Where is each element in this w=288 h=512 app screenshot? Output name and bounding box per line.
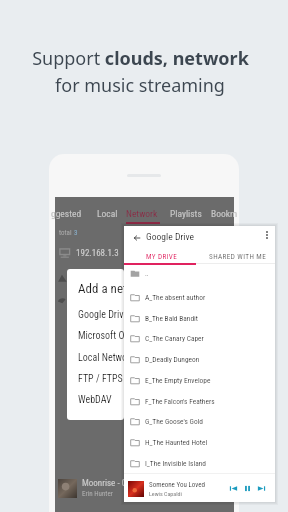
staticText: Moonrise - 0 bbox=[82, 478, 127, 489]
staticText: A_The absent author bbox=[145, 293, 206, 302]
button[interactable]: Someone You Loved bbox=[124, 475, 275, 502]
staticText: Someone You Loved bbox=[149, 481, 205, 489]
button[interactable]: Previous bbox=[227, 482, 240, 495]
button[interactable]: 192.168.1.3 bbox=[59, 245, 238, 261]
staticText: Google Drive bbox=[146, 231, 195, 242]
button[interactable]: Google Drive bbox=[67, 304, 124, 325]
staticText: FTP / FTPS / SFTP bbox=[78, 373, 124, 385]
button[interactable]: Pause bbox=[241, 482, 254, 495]
staticText: ggested bbox=[51, 208, 82, 219]
button[interactable]: MY DRIVE bbox=[124, 247, 196, 264]
button[interactable]: I_The Invisible Island bbox=[124, 454, 275, 472]
button[interactable]: Network bbox=[123, 197, 163, 225]
staticText: Support clouds, network bbox=[32, 46, 249, 71]
staticText: MY DRIVE bbox=[146, 252, 178, 260]
staticText: Microsoft OneDrive bbox=[78, 330, 124, 342]
staticText: E_The Empty Envelope bbox=[145, 376, 211, 385]
staticText: 192.168.1.3 bbox=[76, 248, 119, 259]
staticText: C_The Canary Caper bbox=[145, 334, 204, 343]
button[interactable]: FTP / FTPS / SFTP bbox=[67, 368, 124, 389]
button[interactable]: SHARED WITH ME bbox=[196, 247, 275, 264]
button[interactable]: Local Network bbox=[67, 347, 124, 368]
button[interactable]: A_The absent author bbox=[124, 288, 275, 306]
button[interactable]: Back bbox=[127, 228, 147, 248]
staticText: H_The Haunted Hotel bbox=[145, 438, 208, 447]
staticText: Add a network bbox=[78, 281, 124, 296]
staticText: WebDAV bbox=[78, 394, 112, 406]
staticText: 3 bbox=[74, 229, 78, 237]
button[interactable]: G_The Goose's Gold bbox=[124, 412, 275, 430]
staticText: I_The Invisible Island bbox=[145, 459, 206, 468]
button[interactable]: ggested bbox=[49, 197, 90, 225]
staticText: for music streaming bbox=[55, 73, 225, 98]
staticText: G_The Goose's Gold bbox=[145, 417, 204, 426]
button[interactable]: H_The Haunted Hotel bbox=[124, 433, 275, 451]
staticText: .. bbox=[145, 270, 149, 278]
button[interactable]: More options bbox=[257, 227, 275, 245]
button[interactable]: B_The Bald Bandit bbox=[124, 309, 275, 327]
button[interactable]: Playlists bbox=[167, 197, 201, 225]
staticText: Local bbox=[97, 208, 118, 219]
staticText: Local Network bbox=[78, 352, 124, 364]
button[interactable]: E_The Empty Envelope bbox=[124, 371, 275, 389]
button[interactable]: Microsoft OneDrive bbox=[67, 325, 124, 346]
button[interactable]: F_The Falcon's Feathers bbox=[124, 392, 275, 410]
staticText: Erin Hunter bbox=[82, 490, 113, 498]
staticText: Network bbox=[126, 208, 158, 219]
staticText: B_The Bald Bandit bbox=[145, 314, 198, 323]
button[interactable]: C_The Canary Caper bbox=[124, 329, 275, 347]
staticText: SHARED WITH ME bbox=[209, 252, 267, 260]
staticText: Google Drive bbox=[78, 309, 124, 321]
button[interactable]: D_Deadly Dungeon bbox=[124, 350, 275, 368]
staticText: total bbox=[59, 229, 74, 237]
button[interactable]: Local bbox=[94, 197, 120, 225]
button[interactable]: .. bbox=[124, 266, 275, 281]
staticText: Playlists bbox=[170, 208, 202, 219]
staticText: F_The Falcon's Feathers bbox=[145, 397, 215, 406]
button[interactable]: Moonrise - 0 bbox=[58, 476, 237, 500]
staticText: Bookm bbox=[211, 208, 238, 219]
button[interactable]: Bookm bbox=[208, 197, 238, 225]
button[interactable]: Next bbox=[255, 482, 268, 495]
button[interactable]: WebDAV bbox=[67, 389, 124, 410]
staticText: Lewis Capaldi bbox=[149, 490, 182, 497]
staticText: D_Deadly Dungeon bbox=[145, 355, 200, 364]
